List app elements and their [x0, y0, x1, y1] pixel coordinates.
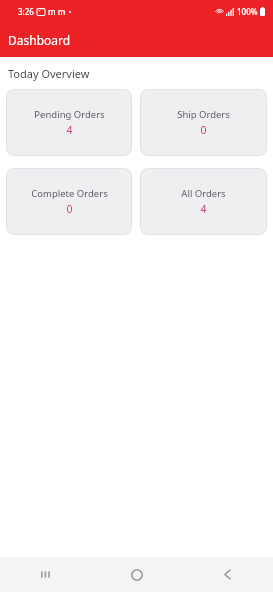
- staticText: 4: [200, 202, 207, 216]
- button[interactable]: Pending Orders: [6, 89, 132, 156]
- staticText: Ship Orders: [177, 108, 230, 121]
- staticText: 4: [66, 123, 73, 137]
- staticText: 0: [200, 123, 207, 137]
- staticText: All Orders: [181, 187, 226, 200]
- button[interactable]: Complete Orders: [6, 168, 132, 235]
- staticText: 3:26: [18, 6, 34, 17]
- staticText: Today Overview: [8, 66, 90, 81]
- button[interactable]: Home: [91, 557, 182, 592]
- button[interactable]: All Orders: [140, 168, 267, 235]
- staticText: Dashboard: [8, 32, 71, 48]
- staticText: m m: [48, 6, 66, 17]
- staticText: 0: [66, 202, 73, 216]
- button[interactable]: Back: [182, 557, 273, 592]
- staticText: Complete Orders: [31, 187, 108, 200]
- staticText: Pending Orders: [34, 108, 105, 121]
- button[interactable]: Recent apps: [0, 557, 91, 592]
- staticText: 100%: [237, 6, 258, 17]
- button[interactable]: Ship Orders: [140, 89, 267, 156]
